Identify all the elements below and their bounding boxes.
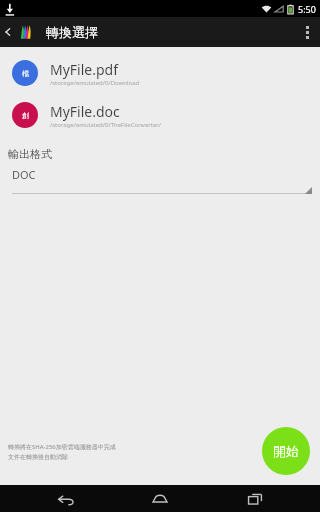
staticText: 5:50 <box>298 3 316 15</box>
staticText: 文件在轉換後自動消除 <box>8 453 68 461</box>
staticText: 轉換將在SHA-256加密雲端服務器中完成 <box>8 443 116 451</box>
staticText: 轉換選擇 <box>46 24 98 40</box>
button[interactable]: Back <box>35 485 95 512</box>
staticText: 檔 <box>22 69 29 78</box>
staticText: MyFile.pdf <box>50 60 119 79</box>
button[interactable]: DOC <box>0 167 320 194</box>
button[interactable]: 檔 <box>0 55 320 91</box>
staticText: DOC <box>12 167 36 182</box>
button[interactable]: 開始 <box>262 427 310 475</box>
button[interactable]: More options <box>294 17 320 47</box>
button[interactable]: Home <box>130 485 190 512</box>
button[interactable]: 創 <box>0 97 320 133</box>
button[interactable]: Back <box>0 17 16 47</box>
button[interactable]: Recent apps <box>225 485 285 512</box>
staticText: 輸出格式 <box>8 147 52 161</box>
staticText: 開始 <box>273 443 299 459</box>
staticText: /storage/emulated/0/TheFileConverter/ <box>50 121 162 129</box>
staticText: MyFile.doc <box>50 102 120 121</box>
staticText: /storage/emulated/0/Download <box>50 79 140 87</box>
staticText: 創 <box>22 111 29 120</box>
